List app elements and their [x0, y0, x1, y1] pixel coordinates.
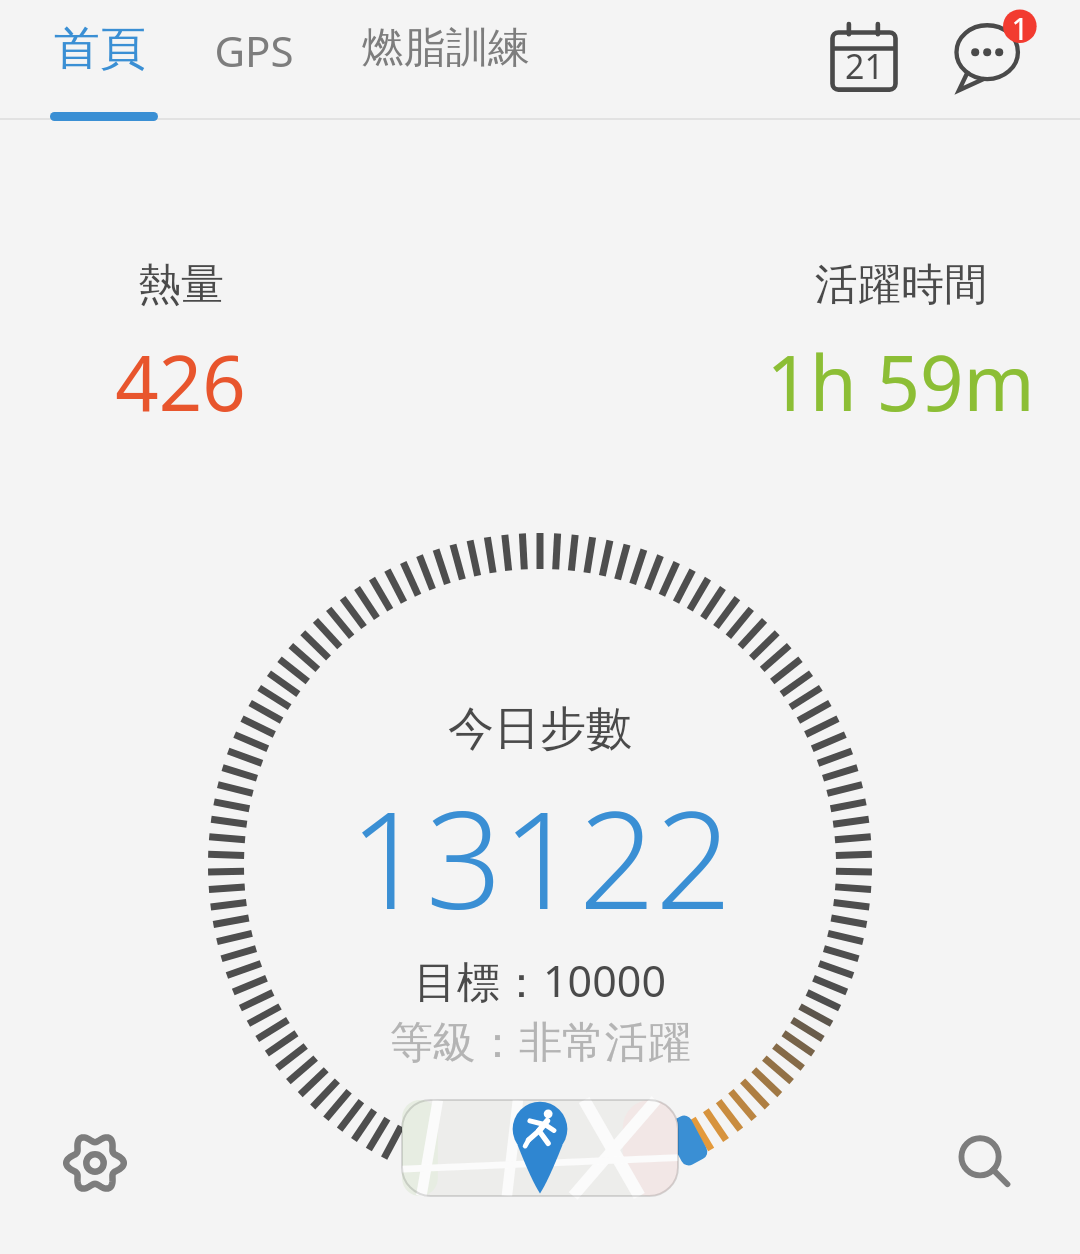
- button[interactable]: Settings: [48, 1116, 142, 1210]
- button[interactable]: 熱量: [0, 258, 360, 434]
- staticText: 13122: [349, 766, 732, 949]
- staticText: 等級：非常活躍: [390, 1016, 691, 1070]
- staticText: 活躍時間: [815, 258, 987, 312]
- staticText: 今日步數: [448, 700, 632, 758]
- button[interactable]: 活躍時間: [720, 258, 1080, 434]
- staticText: 首頁: [54, 20, 146, 78]
- staticText: GPS: [214, 22, 294, 79]
- button[interactable]: Search: [938, 1116, 1032, 1210]
- button[interactable]: 燃脂訓練: [358, 0, 534, 97]
- button[interactable]: 首頁: [50, 0, 150, 98]
- button[interactable]: Start run: [402, 1100, 678, 1196]
- staticText: 1h 59m: [766, 330, 1035, 434]
- button[interactable]: Messages: [944, 8, 1040, 104]
- staticText: 21: [845, 43, 884, 89]
- button[interactable]: GPS: [210, 0, 298, 101]
- staticText: 1: [1011, 8, 1029, 49]
- staticText: 燃脂訓練: [362, 22, 530, 75]
- staticText: 426: [115, 330, 246, 434]
- staticText: 目標：10000: [414, 951, 666, 1010]
- button[interactable]: Calendar: [822, 14, 906, 98]
- staticText: 熱量: [138, 258, 224, 312]
